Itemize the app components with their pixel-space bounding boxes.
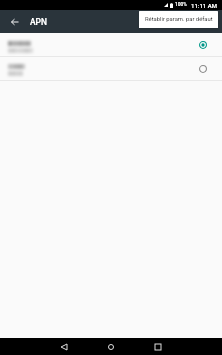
staticText: Rétablir param. par défaut	[145, 16, 213, 23]
button[interactable]	[0, 33, 222, 56]
button[interactable]	[0, 57, 222, 80]
staticText: 100%	[175, 2, 187, 8]
button[interactable]: Home	[102, 338, 120, 355]
button[interactable]: Rétablir param. par défaut	[139, 11, 218, 28]
button[interactable]: Back	[55, 338, 73, 355]
staticText: 11:11 AM	[191, 2, 217, 9]
staticText: APN	[30, 17, 47, 27]
button[interactable]: Back	[4, 11, 25, 32]
button[interactable]: Recents	[149, 338, 167, 355]
